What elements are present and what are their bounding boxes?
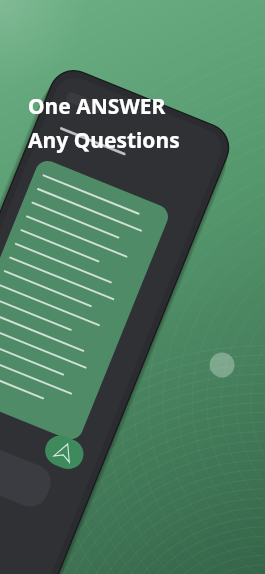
staticText: One ANSWER <box>28 92 166 121</box>
staticText: Any Questions <box>28 126 180 155</box>
